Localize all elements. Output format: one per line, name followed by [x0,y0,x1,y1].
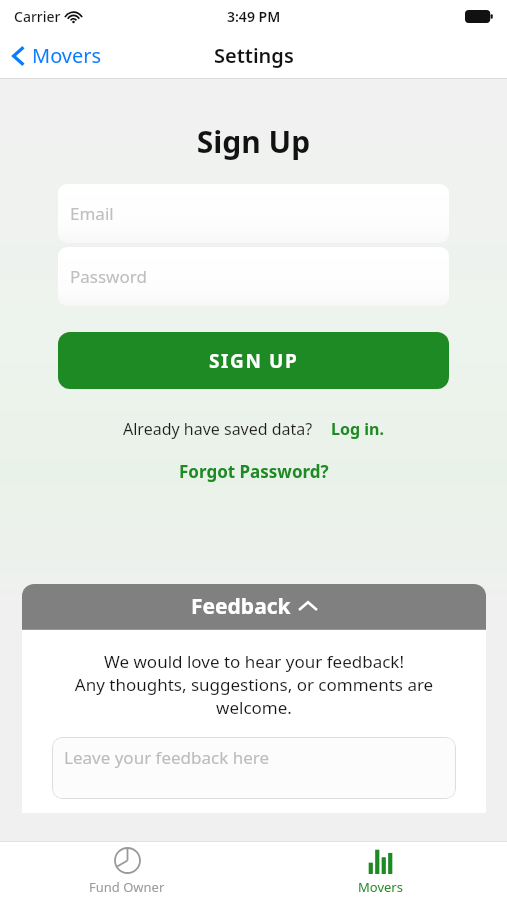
button[interactable]: Forgot Password? [179,460,329,483]
staticText: Email [70,202,114,225]
staticText: Fund Owner [89,878,165,896]
staticText: Leave your feedback here [64,746,270,769]
staticText: We would love to hear your feedback! Any… [36,650,472,719]
button[interactable]: Movers [0,36,112,75]
button[interactable]: Log in. [331,418,384,440]
button[interactable]: Feedback [22,584,486,629]
staticText: Already have saved data? [123,418,313,440]
staticText: Movers [358,878,403,896]
staticText: Password [70,265,147,288]
staticText: Sign Up [0,121,507,162]
button[interactable]: Movers [253,842,507,900]
button[interactable]: Leave your feedback here [52,737,456,799]
button[interactable]: Email [58,184,449,243]
button[interactable]: Fund Owner [0,842,253,900]
staticText: Movers [32,42,102,69]
staticText: Feedback [191,592,291,621]
staticText: Forgot Password? [179,460,329,483]
staticText: Log in. [331,418,384,440]
button[interactable]: Password [58,247,449,306]
staticText: Carrier [14,7,61,26]
staticText: 3:49 PM [227,7,281,26]
staticText: SIGN UP [209,348,299,374]
button[interactable]: SIGN UP [58,332,449,389]
staticText: Settings [214,42,294,69]
